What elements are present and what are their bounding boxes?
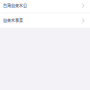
- button[interactable]: 自來水事業: [0, 13, 90, 28]
- staticText: 台灣自來水公: [3, 3, 27, 9]
- staticText: 自來水事業: [3, 18, 23, 23]
- button[interactable]: 台灣自來水公: [0, 0, 90, 13]
